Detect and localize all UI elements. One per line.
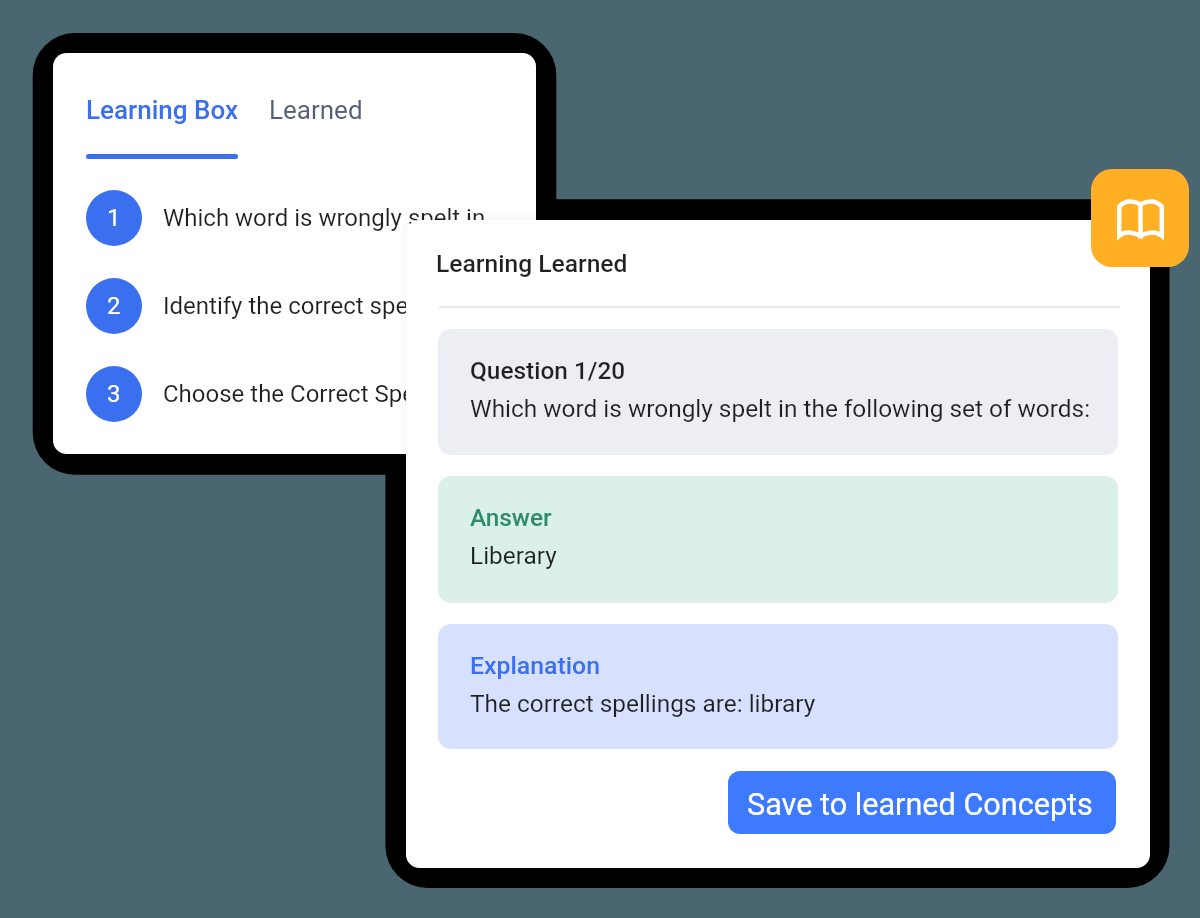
staticText: 2 (107, 292, 121, 320)
staticText: Which word is wrongly spelt in the follo… (470, 394, 1091, 423)
staticText: Liberary (470, 541, 557, 570)
staticText: Save to learned Concepts (747, 787, 1093, 823)
staticText: Question 1/20 (470, 356, 626, 385)
staticText: Learning Learned (436, 249, 628, 278)
staticText: The correct spellings are: library (470, 689, 816, 718)
staticText: Identify the correct spelling of the (163, 292, 521, 320)
button[interactable]: Open book (1091, 169, 1189, 267)
button[interactable]: 2 (53, 278, 536, 334)
button[interactable]: 1 (53, 190, 536, 246)
staticText: 1 (107, 204, 121, 232)
staticText: Choose the Correct Spelling of the (163, 380, 527, 408)
staticText: Which word is wrongly spelt in (163, 204, 486, 232)
staticText: 3 (107, 380, 121, 408)
button[interactable]: Learned (269, 95, 363, 125)
button[interactable]: 3 (53, 366, 536, 422)
staticText: Answer (470, 503, 552, 532)
button[interactable]: Save to learned Concepts (728, 771, 1116, 834)
staticText: Explanation (470, 651, 600, 680)
button[interactable]: Learning Box (86, 95, 239, 125)
